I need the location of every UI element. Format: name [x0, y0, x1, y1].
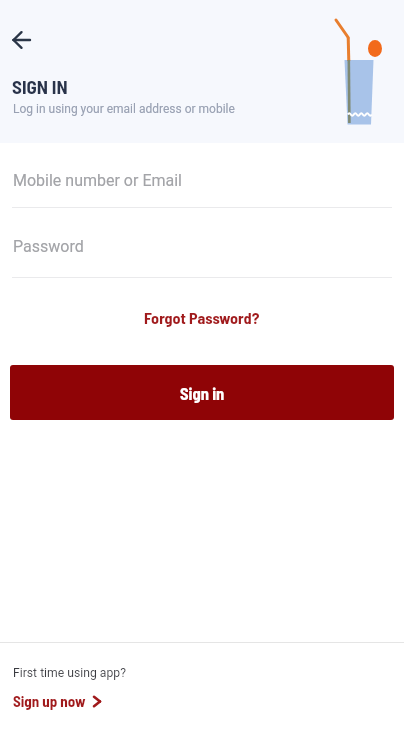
button[interactable] [6, 23, 38, 55]
staticText: Mobile number or Email [13, 171, 182, 190]
staticText: SIGN IN [12, 75, 68, 98]
staticText: Password [13, 237, 84, 256]
staticText: Log in using your email address or mobil… [13, 102, 235, 116]
staticText: Sign in [180, 383, 225, 403]
staticText: Forgot Password? [144, 308, 260, 327]
staticText: First time using app? [13, 666, 126, 680]
button[interactable]: Forgot Password? [0, 302, 404, 332]
staticText: Sign up now [13, 692, 86, 710]
button[interactable]: Password [0, 229, 404, 276]
button[interactable]: Mobile number or Email [0, 162, 404, 207]
button[interactable]: Sign up now [13, 692, 102, 710]
button[interactable]: Sign in [10, 365, 394, 420]
